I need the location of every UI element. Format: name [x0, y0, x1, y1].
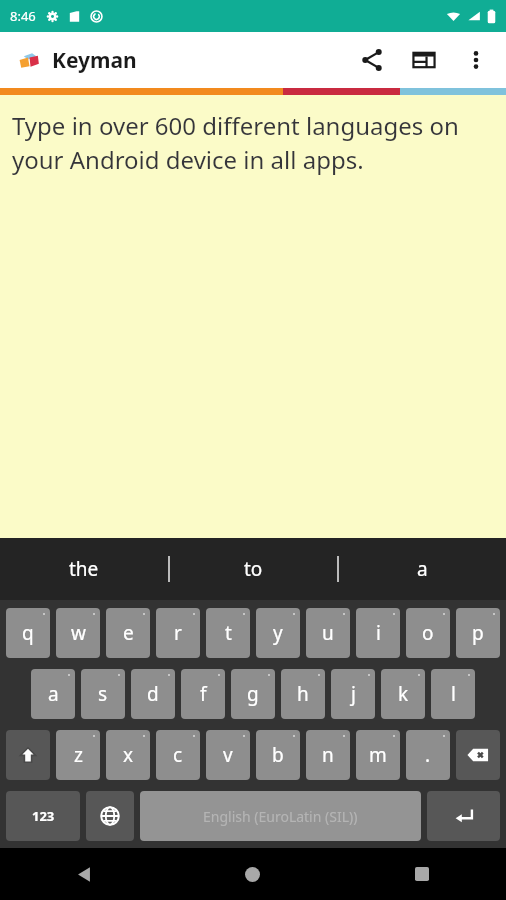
button[interactable]: l — [431, 669, 475, 719]
staticText: q — [22, 620, 34, 646]
button[interactable]: j — [331, 669, 375, 719]
button[interactable]: q — [6, 608, 50, 658]
staticText: . — [425, 742, 431, 768]
staticText: v — [223, 742, 233, 768]
staticText: w — [71, 620, 86, 646]
button[interactable]: u — [306, 608, 350, 658]
button[interactable]: g — [231, 669, 275, 719]
button[interactable]: v — [206, 730, 250, 780]
button[interactable]: t — [206, 608, 250, 658]
button[interactable]: the — [0, 538, 168, 600]
staticText: p — [472, 620, 484, 646]
button[interactable]: m — [356, 730, 400, 780]
button[interactable]: r — [156, 608, 200, 658]
staticText: h — [297, 681, 309, 707]
staticText: t — [225, 620, 232, 646]
button[interactable]: b — [256, 730, 300, 780]
staticText: m — [369, 742, 387, 768]
button[interactable]: f — [181, 669, 225, 719]
button[interactable]: y — [256, 608, 300, 658]
staticText: Keyman — [52, 46, 137, 75]
staticText: i — [376, 620, 381, 646]
button[interactable]: i — [356, 608, 400, 658]
staticText: u — [322, 620, 334, 646]
button[interactable]: More options — [450, 34, 502, 86]
button[interactable]: Browser — [398, 34, 450, 86]
button[interactable]: to — [170, 538, 337, 600]
staticText: r — [174, 620, 182, 646]
button[interactable]: Enter — [427, 791, 500, 841]
staticText: a — [417, 556, 428, 582]
button[interactable]: x — [106, 730, 150, 780]
button[interactable]: s — [81, 669, 125, 719]
staticText: a — [48, 681, 59, 707]
staticText: e — [123, 620, 134, 646]
button[interactable]: p — [456, 608, 500, 658]
button[interactable]: n — [306, 730, 350, 780]
button[interactable]: Recents — [337, 848, 506, 900]
button[interactable]: Change keyboard — [86, 791, 134, 841]
staticText: y — [273, 620, 283, 646]
staticText: x — [123, 742, 134, 768]
button[interactable]: h — [281, 669, 325, 719]
staticText: the — [69, 556, 99, 582]
button[interactable]: Home — [168, 848, 337, 900]
staticText: o — [422, 620, 434, 646]
button[interactable]: a — [31, 669, 75, 719]
button[interactable]: Shift — [6, 730, 50, 780]
staticText: Type in over 600 different languages on … — [12, 109, 494, 177]
staticText: n — [322, 742, 334, 768]
staticText: k — [398, 681, 409, 707]
button[interactable]: z — [56, 730, 100, 780]
staticText: 123 — [32, 807, 55, 825]
button[interactable]: w — [56, 608, 100, 658]
staticText: b — [272, 742, 284, 768]
button[interactable]: o — [406, 608, 450, 658]
button[interactable]: . — [406, 730, 450, 780]
button[interactable]: k — [381, 669, 425, 719]
staticText: to — [244, 556, 263, 582]
button[interactable]: a — [339, 538, 506, 600]
button[interactable]: Numbers — [6, 791, 80, 841]
staticText: c — [173, 742, 183, 768]
staticText: l — [451, 681, 456, 707]
staticText: j — [351, 681, 356, 707]
button[interactable]: Share — [346, 34, 398, 86]
button[interactable]: English (EuroLatin (SIL)) — [140, 791, 421, 841]
staticText: g — [247, 681, 259, 707]
staticText: 8:46 — [10, 7, 36, 25]
staticText: s — [98, 681, 108, 707]
button[interactable]: c — [156, 730, 200, 780]
staticText: d — [147, 681, 159, 707]
button[interactable]: d — [131, 669, 175, 719]
button[interactable]: Back — [0, 848, 168, 900]
staticText: z — [74, 742, 83, 768]
staticText: English (EuroLatin (SIL)) — [203, 807, 358, 826]
button[interactable]: e — [106, 608, 150, 658]
button[interactable]: Type in over 600 different languages on … — [0, 95, 506, 538]
button[interactable]: Backspace — [456, 730, 500, 780]
staticText: f — [200, 681, 207, 707]
